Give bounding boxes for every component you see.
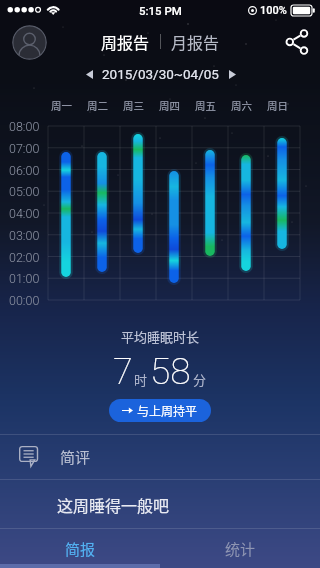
staticText: 简报 bbox=[65, 538, 96, 560]
staticText: 周报告 bbox=[101, 30, 150, 53]
staticText: 2015/03/30~04/05 bbox=[102, 66, 219, 82]
staticText: 02:00 bbox=[9, 250, 40, 265]
button[interactable]: Share bbox=[280, 28, 308, 56]
button[interactable]: Profile bbox=[12, 25, 47, 60]
button[interactable]: 与上周持平 bbox=[109, 399, 211, 422]
staticText: 00:00 bbox=[9, 293, 40, 308]
staticText: 分 bbox=[193, 370, 207, 389]
staticText: 05:00 bbox=[9, 184, 40, 199]
staticText: 08:00 bbox=[9, 119, 40, 134]
staticText: 时 bbox=[134, 370, 148, 389]
staticText: 周二 bbox=[87, 98, 108, 113]
staticText: 周四 bbox=[159, 98, 180, 113]
staticText: 周五 bbox=[195, 98, 216, 113]
button[interactable]: 简评 bbox=[0, 435, 320, 479]
staticText: 统计 bbox=[225, 538, 256, 560]
button[interactable]: 月报告 bbox=[161, 26, 230, 57]
button[interactable]: Next week bbox=[222, 64, 242, 84]
staticText: 58 bbox=[150, 350, 191, 393]
staticText: 06:00 bbox=[9, 163, 40, 178]
staticText: 简评 bbox=[60, 446, 91, 468]
staticText: 03:00 bbox=[9, 228, 40, 243]
staticText: 周一 bbox=[51, 98, 72, 113]
staticText: 与上周持平 bbox=[137, 402, 198, 419]
button[interactable]: 周报告 bbox=[91, 26, 160, 57]
staticText: 04:00 bbox=[9, 206, 40, 221]
staticText: 5:15 PM bbox=[139, 4, 182, 17]
button[interactable]: 这周睡得一般吧 bbox=[0, 480, 320, 528]
staticText: 这周睡得一般吧 bbox=[57, 493, 170, 516]
staticText: 周三 bbox=[123, 98, 144, 113]
staticText: 周日 bbox=[267, 98, 288, 113]
staticText: 01:00 bbox=[9, 271, 40, 286]
button[interactable]: Previous week bbox=[79, 64, 99, 84]
staticText: 07:00 bbox=[9, 141, 40, 156]
staticText: 100% bbox=[260, 4, 287, 17]
button[interactable]: 简报 bbox=[0, 529, 160, 568]
staticText: 周六 bbox=[231, 98, 252, 113]
button[interactable]: 统计 bbox=[160, 529, 320, 568]
staticText: 7 bbox=[113, 351, 133, 393]
staticText: 月报告 bbox=[171, 30, 220, 53]
staticText: 平均睡眠时长 bbox=[121, 327, 200, 346]
